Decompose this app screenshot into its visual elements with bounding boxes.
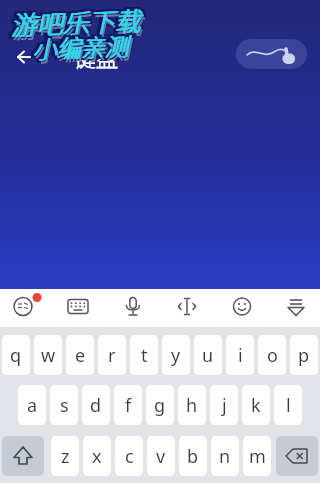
button[interactable]: m bbox=[243, 436, 271, 476]
button[interactable]: x bbox=[83, 436, 111, 476]
staticText: 小编亲测 bbox=[31, 28, 129, 67]
staticText: 游吧乐下载 bbox=[8, 3, 141, 45]
button[interactable] bbox=[2, 436, 44, 476]
staticText: 游吧乐下载 bbox=[12, 3, 145, 45]
button[interactable]: w bbox=[34, 335, 62, 375]
button[interactable]: p bbox=[290, 335, 318, 375]
staticText: 游吧乐下载 bbox=[9, 2, 142, 44]
staticText: s bbox=[60, 393, 69, 418]
staticText: 小编亲测 bbox=[31, 29, 129, 68]
staticText: 小编亲测 bbox=[31, 25, 128, 64]
staticText: 小编亲测 bbox=[33, 25, 130, 64]
staticText: p bbox=[298, 343, 310, 368]
button[interactable] bbox=[267, 289, 320, 327]
staticText: 游吧乐下载 bbox=[8, 0, 140, 41]
staticText: 小编亲测 bbox=[34, 27, 132, 65]
staticText: u bbox=[202, 343, 214, 368]
button[interactable]: k bbox=[242, 385, 270, 425]
staticText: 小编亲测 bbox=[34, 26, 132, 64]
button[interactable]: c bbox=[115, 436, 143, 476]
staticText: b bbox=[187, 444, 199, 469]
button[interactable] bbox=[10, 43, 38, 71]
staticText: 游吧乐下载 bbox=[7, 2, 140, 44]
staticText: 小编亲测 bbox=[28, 25, 126, 64]
staticText: 小编亲测 bbox=[34, 28, 132, 66]
staticText: 游吧乐下载 bbox=[9, 0, 141, 42]
staticText: n bbox=[219, 444, 231, 469]
staticText: 游吧乐下载 bbox=[6, 0, 138, 42]
staticText: t bbox=[141, 343, 148, 368]
staticText: 小编亲测 bbox=[30, 27, 128, 66]
button[interactable]: d bbox=[82, 385, 110, 425]
button[interactable] bbox=[236, 39, 307, 69]
staticText: 游吧乐下载 bbox=[8, 0, 140, 42]
staticText: d bbox=[90, 393, 102, 418]
staticText: 小编亲测 bbox=[32, 27, 130, 66]
button[interactable]: i bbox=[226, 335, 254, 375]
button[interactable]: j bbox=[210, 385, 238, 425]
button[interactable] bbox=[0, 289, 54, 327]
staticText: e bbox=[75, 343, 86, 368]
staticText: 游吧乐下载 bbox=[10, 1, 143, 43]
button[interactable]: e bbox=[66, 335, 94, 375]
button[interactable]: y bbox=[162, 335, 190, 375]
button[interactable]: s bbox=[50, 385, 78, 425]
staticText: 游吧乐下载 bbox=[8, 1, 141, 43]
staticText: 小编亲测 bbox=[30, 28, 128, 67]
button[interactable]: g bbox=[146, 385, 174, 425]
staticText: g bbox=[154, 393, 166, 418]
button[interactable]: v bbox=[147, 436, 175, 476]
staticText: 游吧乐下载 bbox=[12, 2, 145, 44]
staticText: 游吧乐下载 bbox=[10, 3, 143, 45]
button[interactable]: u bbox=[194, 335, 222, 375]
staticText: h bbox=[186, 393, 198, 418]
button[interactable]: z bbox=[51, 436, 79, 476]
button[interactable]: b bbox=[179, 436, 207, 476]
staticText: m bbox=[249, 444, 266, 469]
button[interactable]: n bbox=[211, 436, 239, 476]
staticText: 游吧乐下载 bbox=[8, 2, 141, 44]
staticText: 游吧乐下载 bbox=[11, 0, 143, 41]
staticText: 小编亲测 bbox=[33, 27, 131, 66]
staticText: 小编亲测 bbox=[29, 28, 127, 67]
staticText: 小编亲测 bbox=[32, 28, 130, 67]
staticText: 小编亲测 bbox=[33, 30, 131, 69]
button[interactable]: l bbox=[274, 385, 302, 425]
button[interactable] bbox=[108, 289, 161, 327]
button[interactable]: f bbox=[114, 385, 142, 425]
staticText: 游吧乐下载 bbox=[9, 1, 142, 43]
staticText: l bbox=[286, 393, 291, 418]
button[interactable]: a bbox=[18, 385, 46, 425]
staticText: r bbox=[108, 343, 116, 368]
staticText: a bbox=[27, 393, 38, 418]
button[interactable] bbox=[161, 289, 214, 327]
staticText: 小编亲测 bbox=[31, 27, 129, 66]
button[interactable]: q bbox=[2, 335, 30, 375]
staticText: k bbox=[251, 393, 261, 418]
staticText: 小编亲测 bbox=[32, 26, 130, 65]
button[interactable] bbox=[54, 289, 108, 327]
staticText: 小编亲测 bbox=[32, 29, 130, 68]
staticText: 游吧乐下载 bbox=[12, 1, 145, 43]
button[interactable]: r bbox=[98, 335, 126, 375]
staticText: 游吧乐下载 bbox=[11, 2, 144, 44]
staticText: 游吧乐下载 bbox=[10, 1, 143, 43]
staticText: 游吧乐下载 bbox=[10, 2, 143, 44]
staticText: 游吧乐下载 bbox=[12, 0, 144, 41]
button[interactable]: h bbox=[178, 385, 206, 425]
staticText: 小编亲测 bbox=[31, 26, 129, 65]
button[interactable]: o bbox=[258, 335, 286, 375]
staticText: 游吧乐下载 bbox=[7, 0, 139, 42]
staticText: 游吧乐下载 bbox=[9, 0, 141, 41]
button[interactable] bbox=[214, 289, 267, 327]
staticText: c bbox=[125, 444, 134, 469]
button[interactable]: t bbox=[130, 335, 158, 375]
staticText: 游吧乐下载 bbox=[6, 0, 138, 41]
button[interactable] bbox=[276, 436, 318, 476]
staticText: w bbox=[41, 343, 56, 368]
staticText: 键盘 bbox=[74, 41, 119, 73]
staticText: 小编亲测 bbox=[32, 25, 129, 64]
staticText: 游吧乐下载 bbox=[9, 3, 142, 45]
staticText: 游吧乐下载 bbox=[12, 0, 144, 42]
staticText: i bbox=[238, 343, 243, 368]
